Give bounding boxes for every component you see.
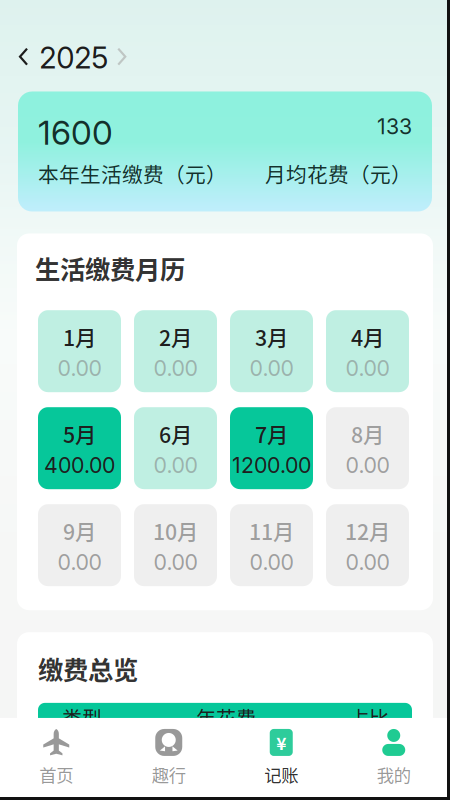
staticText: 7月 — [255, 418, 288, 449]
staticText: 4月 — [351, 321, 384, 352]
staticText: 我的 — [377, 762, 411, 787]
button[interactable]: 12月 — [326, 504, 409, 586]
staticText: 3月 — [255, 321, 288, 352]
button[interactable]: Previous year — [16, 44, 33, 72]
staticText: 400.00 — [44, 452, 115, 478]
staticText: 趣行 — [152, 762, 186, 787]
button[interactable]: 1月 — [38, 310, 121, 392]
button[interactable]: 首页 — [0, 718, 112, 800]
staticText: 2月 — [159, 321, 192, 352]
button[interactable]: 10月 — [134, 504, 217, 586]
staticText: 0.00 — [153, 549, 197, 575]
staticText: 缴费总览 — [38, 650, 138, 687]
staticText: 12月 — [345, 515, 390, 546]
staticText: 年花费 — [196, 703, 256, 732]
staticText: 0.00 — [153, 355, 197, 381]
staticText: 5月 — [63, 418, 96, 449]
staticText: 0.00 — [153, 452, 197, 478]
staticText: 9月 — [63, 515, 96, 546]
staticText: 11月 — [249, 515, 294, 546]
button[interactable]: 7月 — [230, 407, 313, 489]
button[interactable]: 我的 — [337, 718, 450, 800]
staticText: 生活缴费月历 — [35, 249, 185, 286]
button[interactable]: 9月 — [38, 504, 121, 586]
button[interactable]: 3月 — [230, 310, 313, 392]
button[interactable]: 趣行 — [112, 718, 225, 800]
staticText: 占比 — [349, 703, 389, 732]
staticText: 1600 — [38, 112, 113, 153]
staticText: 0.00 — [345, 549, 389, 575]
staticText: 6月 — [159, 418, 192, 449]
button[interactable]: 2月 — [134, 310, 217, 392]
staticText: 0.00 — [345, 355, 389, 381]
staticText: 1月 — [63, 321, 96, 352]
staticText: 10月 — [153, 515, 198, 546]
staticText: 8月 — [351, 418, 384, 449]
staticText: 0.00 — [249, 549, 293, 575]
button[interactable]: 6月 — [134, 407, 217, 489]
staticText: 记账 — [264, 762, 298, 787]
staticText: 月均花费（元） — [265, 159, 412, 188]
staticText: 0.00 — [57, 355, 101, 381]
button[interactable]: 4月 — [326, 310, 409, 392]
staticText: 2025 — [39, 40, 108, 75]
staticText: 133 — [377, 113, 412, 139]
staticText: 本年生活缴费（元） — [38, 159, 227, 188]
staticText: 0.00 — [57, 549, 101, 575]
staticText: ¥ — [276, 730, 286, 755]
button[interactable]: 8月 — [326, 407, 409, 489]
staticText: 0.00 — [345, 452, 389, 478]
button[interactable]: ¥ — [225, 718, 337, 800]
staticText: 0.00 — [249, 355, 293, 381]
staticText: 首页 — [39, 762, 73, 787]
button[interactable]: 5月 — [38, 407, 121, 489]
button[interactable]: 11月 — [230, 504, 313, 586]
button[interactable]: Next year — [114, 44, 131, 72]
staticText: 1200.00 — [232, 452, 311, 478]
staticText: 类型 — [62, 703, 102, 732]
